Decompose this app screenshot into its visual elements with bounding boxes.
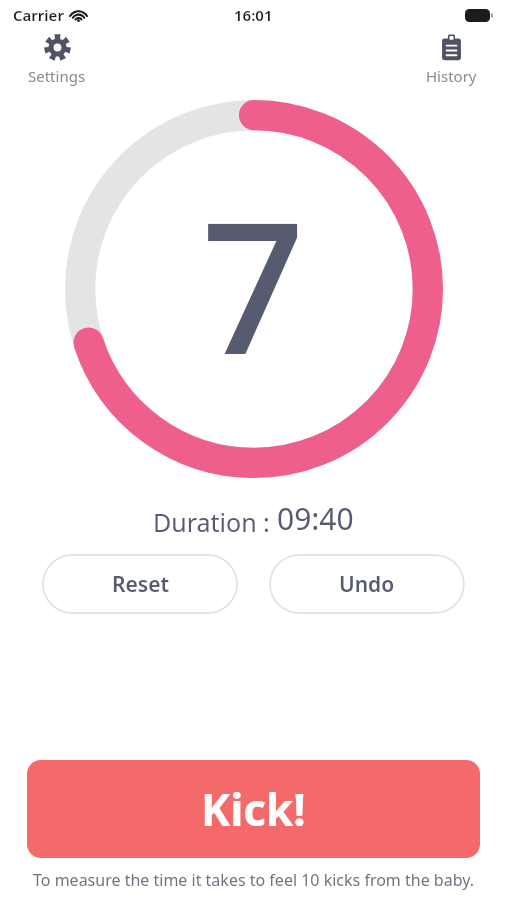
staticText: 16:01 xyxy=(234,5,273,25)
staticText: 7 xyxy=(201,159,306,407)
button[interactable]: Kick! xyxy=(27,760,480,858)
staticText: History xyxy=(426,66,477,86)
staticText: Reset xyxy=(112,570,169,599)
button[interactable]: History xyxy=(420,32,483,88)
staticText: Kick! xyxy=(201,779,306,839)
staticText: To measure the time it takes to feel 10 … xyxy=(33,869,474,891)
button[interactable]: Settings xyxy=(22,32,92,88)
staticText: Settings xyxy=(28,66,86,86)
button[interactable]: Reset xyxy=(42,554,238,614)
other: Settings xyxy=(44,34,71,61)
staticText: Duration : xyxy=(153,505,277,539)
staticText: Carrier xyxy=(13,5,64,25)
staticText: Undo xyxy=(339,570,395,599)
staticText: 09:40 xyxy=(277,498,354,539)
button[interactable]: Undo xyxy=(269,554,465,614)
other: History xyxy=(438,34,465,61)
